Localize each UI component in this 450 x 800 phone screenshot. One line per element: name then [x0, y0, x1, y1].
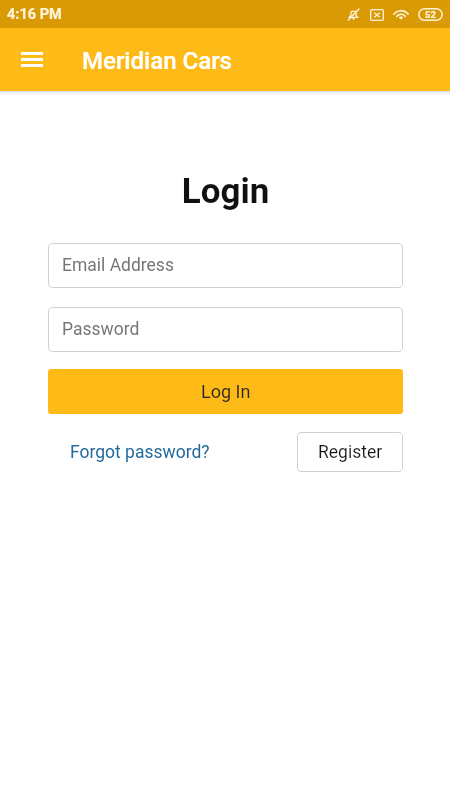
staticText: Password [62, 319, 140, 340]
staticText: Forgot password? [70, 442, 210, 463]
button[interactable]: Email Address [48, 243, 403, 288]
staticText: Meridian Cars [82, 47, 232, 75]
button[interactable]: Open navigation menu [8, 35, 56, 83]
staticText: Register [318, 442, 383, 463]
button[interactable]: Register [297, 432, 403, 472]
staticText: Email Address [62, 255, 174, 276]
staticText: Log In [201, 381, 251, 402]
button[interactable]: Password [48, 307, 403, 352]
button[interactable]: Log In [48, 369, 403, 414]
staticText: Login [48, 171, 403, 212]
staticText: 52 [425, 9, 436, 20]
staticText: 4:16 PM [7, 6, 62, 23]
button[interactable]: Forgot password? [70, 434, 210, 471]
